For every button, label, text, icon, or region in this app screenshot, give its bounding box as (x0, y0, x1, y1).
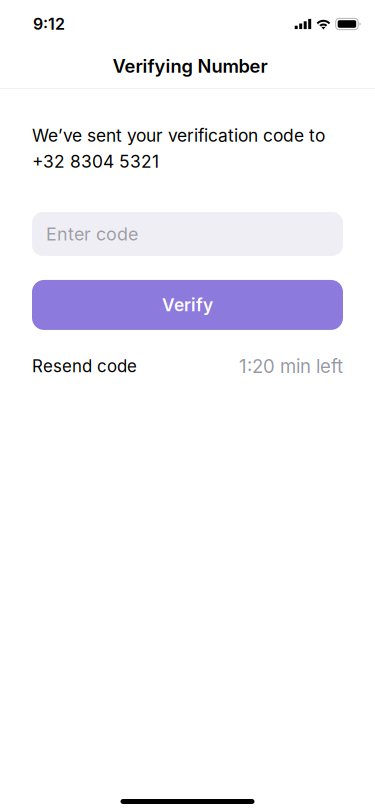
staticText: 1:20 min left (239, 355, 343, 377)
button[interactable]: Resend code (32, 356, 137, 376)
staticText: Verifying Number (112, 55, 267, 77)
staticText: 9:12 (33, 14, 65, 34)
staticText: +32 8304 5321 (32, 151, 159, 172)
staticText: Resend code (32, 356, 137, 376)
staticText: Verify (162, 294, 213, 315)
button[interactable]: Enter code (32, 212, 343, 256)
button[interactable]: Verify (32, 280, 343, 330)
staticText: We’ve sent your verification code to (32, 125, 325, 146)
staticText: Enter code (46, 223, 138, 245)
